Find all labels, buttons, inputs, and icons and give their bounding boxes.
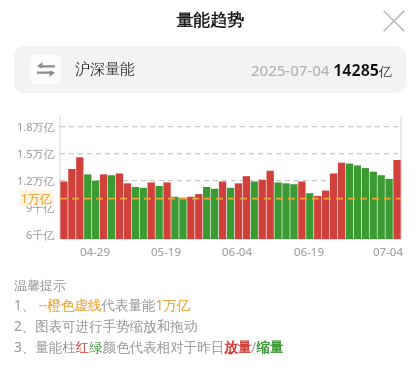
staticText: 1万亿 (21, 190, 52, 206)
button[interactable]: 切换指标 (14, 46, 406, 93)
staticText: 2、图表可进行手势缩放和拖动 (14, 317, 198, 335)
staticText: 沪深量能 (75, 60, 135, 79)
staticText: 6千亿 (26, 227, 55, 242)
staticText: 06-19 (294, 244, 325, 260)
staticText: 2025-07-04 14285亿 (251, 59, 392, 81)
staticText: 05-19 (151, 244, 182, 260)
staticText: 1.5万亿 (17, 146, 55, 161)
staticText: 06-04 (222, 244, 253, 260)
other: 切换指标 (30, 55, 61, 84)
staticText: 3、量能柱红绿颜色代表相对于昨日放量/缩量 (14, 338, 284, 356)
staticText: 1、 --橙色虚线代表量能1万亿 (14, 296, 191, 314)
staticText: 04-29 (80, 244, 111, 260)
staticText: 9千亿 (26, 200, 55, 215)
staticText: 07-04 (373, 244, 404, 260)
button[interactable]: 关闭 (376, 3, 412, 39)
staticText: 温馨提示 (14, 277, 66, 293)
staticText: 量能趋势 (176, 10, 244, 31)
staticText: 1.8万亿 (17, 119, 55, 134)
staticText: 1.2万亿 (17, 173, 55, 188)
